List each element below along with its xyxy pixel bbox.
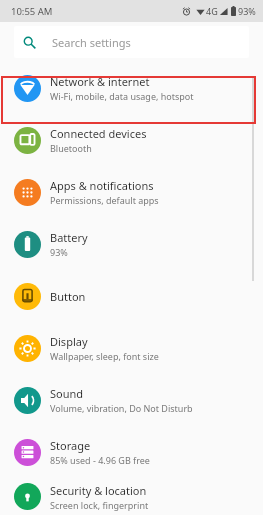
staticText: Search settings [52,35,131,50]
staticText: Permissions, default apps [50,194,159,206]
staticText: Volume, vibration, Do Not Disturb [50,402,193,414]
staticText: Wallpaper, sleep, font size [50,350,159,362]
staticText: Network & internet [50,74,150,89]
staticText: 85% used - 4.96 GB free [50,454,150,466]
button[interactable]: Security & location [0,478,263,515]
staticText: Battery [50,230,88,245]
staticText: Security & location [50,483,147,498]
button[interactable]: Sound [0,374,263,426]
button[interactable]: Storage [0,426,263,478]
staticText: Storage [50,438,91,453]
button[interactable]: Network & internet [0,62,263,114]
staticText: Connected devices [50,126,147,141]
staticText: 4G [206,5,218,17]
button[interactable]: Connected devices [0,114,263,166]
button[interactable]: Apps & notifications [0,166,263,218]
button[interactable]: Battery [0,218,263,270]
staticText: Apps & notifications [50,178,154,193]
staticText: 93% [238,5,256,17]
staticText: 10:55 AM [11,5,53,18]
staticText: Screen lock, fingerprint [50,499,149,511]
staticText: Button [50,289,86,304]
staticText: Wi-Fi, mobile, data usage, hotspot [50,90,194,102]
staticText: Sound [50,386,84,401]
button[interactable]: Display [0,322,263,374]
staticText: Bluetooth [50,142,92,154]
staticText: Display [50,334,88,349]
button[interactable]: Search settings [14,26,249,58]
button[interactable]: Button [0,270,263,322]
staticText: 93% [50,246,68,258]
